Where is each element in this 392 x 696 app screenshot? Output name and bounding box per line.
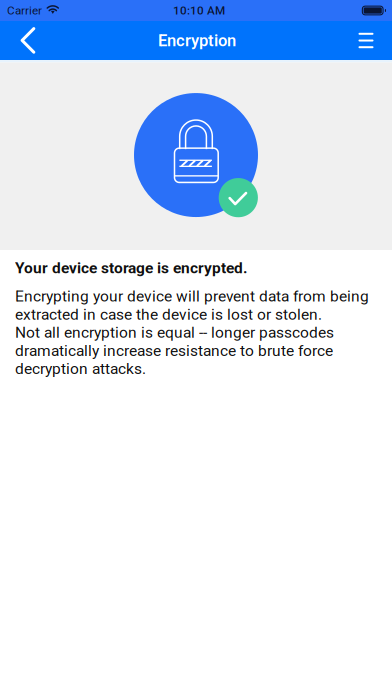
staticText: 10:10 AM <box>173 4 225 17</box>
staticText: Encryption <box>158 31 236 50</box>
staticText: Not all encryption is equal -- longer pa… <box>15 323 334 378</box>
button[interactable]: Menu <box>345 21 387 60</box>
staticText: Encrypting your device will prevent data… <box>15 287 369 323</box>
staticText: Your device storage is encrypted. <box>15 259 247 277</box>
button[interactable]: Back <box>7 21 49 60</box>
staticText: Carrier <box>7 4 42 17</box>
